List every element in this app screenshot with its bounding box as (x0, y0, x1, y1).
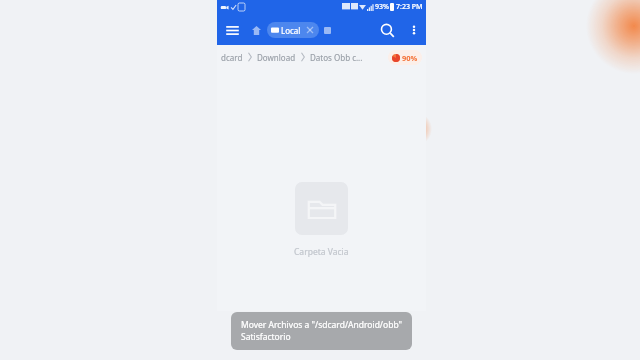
button[interactable]: Local (267, 22, 319, 38)
button[interactable]: More options (402, 18, 426, 42)
staticText: Carpeta Vacia (294, 246, 349, 258)
button[interactable]: Tabs (319, 22, 335, 38)
button[interactable]: Datos Obb c... (310, 52, 363, 63)
button[interactable]: 90% (388, 50, 422, 65)
staticText: 90% (402, 53, 418, 63)
button[interactable]: Home (247, 21, 265, 39)
button[interactable]: Download (257, 52, 296, 63)
staticText: Satisfactorio (241, 331, 291, 343)
staticText: Local (281, 25, 301, 36)
button[interactable]: dcard (221, 52, 243, 63)
staticText: Mover Archivos a "/sdcard/Android/obb" (241, 319, 402, 331)
staticText: 93% (375, 2, 389, 12)
button[interactable]: Search (372, 15, 402, 45)
button[interactable]: Menu (217, 15, 247, 45)
staticText: 7:23 PM (396, 2, 423, 12)
button[interactable]: Mover Archivos a "/sdcard/Android/obb" (231, 312, 412, 350)
